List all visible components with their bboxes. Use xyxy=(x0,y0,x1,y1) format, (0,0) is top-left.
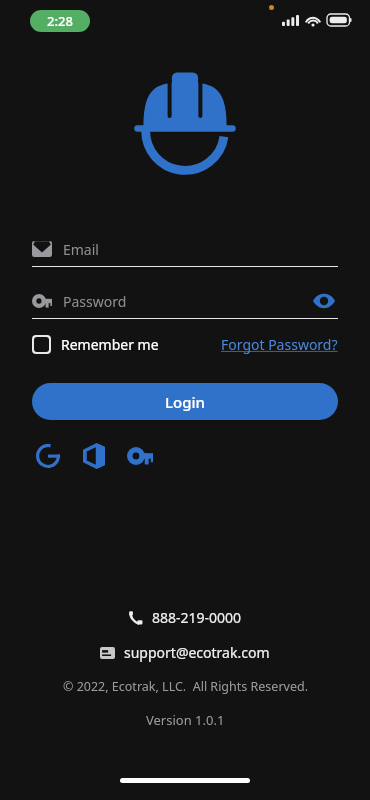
staticText: Login xyxy=(165,392,205,412)
staticText: Remember me xyxy=(61,335,159,354)
staticText: Password xyxy=(63,292,127,311)
button[interactable]: Remember me xyxy=(32,335,159,354)
button[interactable]: 888-219-0000 xyxy=(129,608,242,627)
staticText: 2:28 xyxy=(47,12,73,30)
button[interactable]: Password xyxy=(32,284,338,318)
staticText: Forgot Password? xyxy=(221,335,338,354)
button[interactable]: Sign in with Microsoft xyxy=(78,440,110,472)
button[interactable]: Forgot Password? xyxy=(221,335,338,354)
button[interactable]: support@ecotrak.com xyxy=(100,643,270,662)
staticText: Version 1.0.1 xyxy=(146,711,225,729)
staticText: support@ecotrak.com xyxy=(124,643,270,662)
button[interactable]: Sign in with SSO xyxy=(124,440,156,472)
button[interactable]: Show password xyxy=(310,287,338,315)
staticText: Email xyxy=(63,240,99,259)
button[interactable]: Email xyxy=(32,232,338,266)
staticText: 888-219-0000 xyxy=(152,608,242,627)
button[interactable]: Login xyxy=(32,383,338,420)
staticText: © 2022, Ecotrak, LLC. All Rights Reserve… xyxy=(63,678,308,695)
button[interactable]: Sign in with Google xyxy=(32,440,64,472)
